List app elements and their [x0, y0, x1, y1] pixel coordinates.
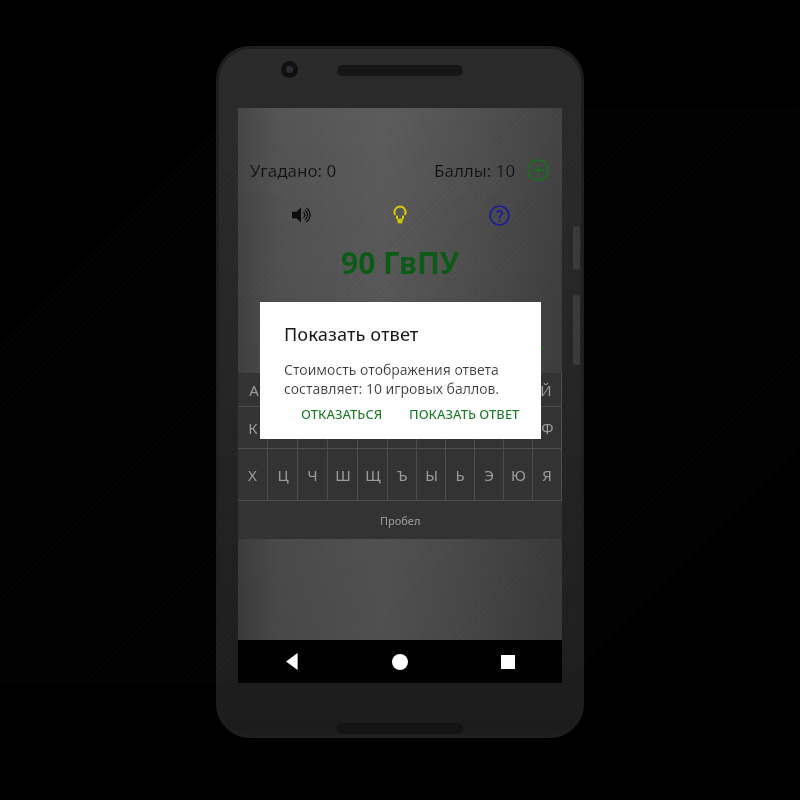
- staticText: К: [248, 418, 258, 438]
- button[interactable]: З: [466, 373, 497, 406]
- button[interactable]: Домой: [346, 640, 454, 683]
- staticText: Ы: [425, 465, 438, 485]
- staticText: Д: [380, 380, 391, 400]
- button[interactable]: Х: [238, 449, 267, 500]
- button[interactable]: Ц: [268, 449, 297, 500]
- button[interactable]: Щ: [358, 449, 387, 500]
- button[interactable]: Р: [417, 407, 445, 448]
- staticText: Стоимость отображения ответа составляет:…: [284, 360, 500, 398]
- button[interactable]: Н: [328, 407, 357, 448]
- staticText: Р: [426, 418, 436, 438]
- staticText: А: [249, 380, 259, 400]
- staticText: Й: [540, 380, 552, 400]
- button[interactable]: Обзор: [454, 640, 562, 683]
- button[interactable]: Добавить баллы: [526, 158, 550, 182]
- button[interactable]: Л: [268, 407, 297, 448]
- button[interactable]: Э: [475, 449, 503, 500]
- staticText: Ф: [541, 418, 554, 438]
- staticText: Угадано: 0: [250, 159, 337, 182]
- button[interactable]: Назад: [238, 640, 346, 683]
- button[interactable]: ПОКАЗАТЬ ОТВЕТ: [400, 398, 529, 429]
- button[interactable]: М: [298, 407, 327, 448]
- staticText: Б: [282, 380, 292, 400]
- button[interactable]: О: [358, 407, 387, 448]
- button[interactable]: Подсказка: [385, 200, 415, 230]
- staticText: Т: [485, 418, 494, 438]
- button[interactable]: Ш: [328, 449, 357, 500]
- button[interactable]: К: [238, 407, 267, 448]
- button[interactable]: В: [304, 373, 336, 406]
- staticText: Ь: [455, 465, 465, 485]
- button[interactable]: У: [504, 407, 532, 448]
- staticText: В: [315, 380, 325, 400]
- staticText: Е: [413, 380, 422, 400]
- staticText: Э: [484, 465, 494, 485]
- staticText: Я: [542, 465, 552, 485]
- button[interactable]: Г: [337, 373, 369, 406]
- button[interactable]: Д: [370, 373, 401, 406]
- button[interactable]: Ч: [298, 449, 327, 500]
- staticText: М: [306, 418, 320, 438]
- staticText: ОТКАЗАТЬСЯ: [301, 405, 383, 422]
- staticText: З: [477, 380, 486, 400]
- button[interactable]: С: [446, 407, 474, 448]
- staticText: Ю: [511, 465, 526, 485]
- staticText: Х: [248, 465, 257, 485]
- staticText: Баллы: 10: [434, 159, 516, 182]
- staticText: Ж: [443, 380, 457, 400]
- button[interactable]: Б: [271, 373, 303, 406]
- button[interactable]: Я: [533, 449, 561, 500]
- button[interactable]: А: [238, 373, 270, 406]
- staticText: Ъ: [397, 465, 408, 485]
- staticText: С: [455, 418, 465, 438]
- button[interactable]: Звук: [286, 200, 316, 230]
- staticText: Показать ответ: [284, 322, 419, 347]
- staticText: Н: [337, 418, 349, 438]
- button[interactable]: ОТКАЗАТЬСЯ: [292, 398, 392, 429]
- button[interactable]: Ы: [417, 449, 445, 500]
- staticText: Пробел: [380, 513, 421, 528]
- button[interactable]: Т: [475, 407, 503, 448]
- button[interactable]: Отправить: [524, 335, 550, 361]
- button[interactable]: Ю: [504, 449, 532, 500]
- staticText: 90 ГвПУ: [341, 242, 460, 283]
- staticText: Щ: [365, 465, 381, 485]
- button[interactable]: Ж: [434, 373, 465, 406]
- button[interactable]: Ъ: [388, 449, 416, 500]
- staticText: Ц: [277, 465, 289, 485]
- staticText: ПОКАЗАТЬ ОТВЕТ: [409, 405, 520, 422]
- button[interactable]: Помощь: [484, 200, 514, 230]
- button[interactable]: Й: [530, 373, 561, 406]
- staticText: Ш: [335, 465, 351, 485]
- button[interactable]: П: [388, 407, 416, 448]
- button[interactable]: Ф: [533, 407, 561, 448]
- button[interactable]: Е: [402, 373, 433, 406]
- button[interactable]: Ь: [446, 449, 474, 500]
- button[interactable]: Пробел: [238, 501, 562, 539]
- staticText: Г: [349, 380, 357, 400]
- staticText: О: [367, 418, 379, 438]
- staticText: У: [513, 418, 523, 438]
- staticText: Ч: [307, 465, 318, 485]
